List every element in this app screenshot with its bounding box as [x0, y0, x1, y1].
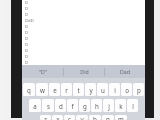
staticText: d: [59, 102, 63, 110]
staticText: q: [27, 86, 31, 94]
button[interactable]: D: [22, 54, 145, 60]
button[interactable]: f: [67, 99, 78, 112]
staticText: y: [89, 86, 93, 94]
staticText: i: [114, 86, 116, 94]
staticText: Did: [80, 68, 89, 75]
staticText: k: [119, 102, 123, 110]
button[interactable]: Did: [64, 65, 104, 78]
staticText: D: [25, 60, 29, 65]
button[interactable]: DdD: [22, 18, 145, 24]
staticText: p: [137, 86, 141, 94]
staticText: a: [33, 102, 37, 110]
staticText: g: [83, 102, 87, 110]
staticText: r: [65, 86, 68, 94]
button[interactable]: D: [22, 30, 145, 36]
button[interactable]: D: [22, 42, 145, 48]
button[interactable]: a: [29, 99, 41, 112]
staticText: m: [118, 115, 124, 120]
button[interactable]: Dad: [105, 65, 145, 78]
staticText: D: [25, 12, 29, 18]
button[interactable]: v: [76, 115, 88, 120]
button[interactable]: k: [115, 99, 126, 112]
button[interactable]: D: [22, 24, 145, 30]
button[interactable]: x: [52, 115, 63, 120]
button[interactable]: D: [22, 48, 145, 54]
button[interactable]: t: [73, 83, 84, 96]
button[interactable]: n: [102, 115, 114, 120]
button[interactable]: p: [133, 83, 144, 96]
staticText: c: [68, 115, 71, 120]
button[interactable]: q: [23, 83, 35, 96]
staticText: D: [25, 36, 29, 42]
button[interactable]: o: [121, 83, 132, 96]
staticText: D: [25, 30, 29, 36]
button[interactable]: w: [36, 83, 48, 96]
button[interactable]: c: [64, 115, 75, 120]
button[interactable]: u: [97, 83, 108, 96]
button[interactable]: h: [91, 99, 102, 112]
button[interactable]: d: [55, 99, 66, 112]
button[interactable]: l: [127, 99, 138, 112]
button[interactable]: j: [103, 99, 114, 112]
staticText: f: [71, 102, 74, 110]
staticText: Dad: [120, 68, 130, 75]
button[interactable]: r: [61, 83, 72, 96]
button[interactable]: D: [22, 6, 145, 12]
staticText: l: [132, 102, 134, 110]
staticText: e: [53, 86, 57, 94]
staticText: “D”: [39, 68, 47, 75]
staticText: o: [125, 86, 129, 94]
button[interactable]: y: [85, 83, 96, 96]
staticText: v: [80, 115, 84, 120]
staticText: D: [25, 6, 29, 12]
staticText: n: [106, 115, 110, 120]
button[interactable]: e: [49, 83, 60, 96]
staticText: w: [40, 86, 45, 94]
staticText: s: [47, 102, 50, 110]
button[interactable]: i: [109, 83, 120, 96]
staticText: D: [25, 24, 29, 30]
button[interactable]: D: [22, 36, 145, 42]
button[interactable]: z: [40, 115, 51, 120]
button[interactable]: D: [22, 60, 145, 65]
button[interactable]: m: [115, 115, 127, 120]
button[interactable]: D: [22, 12, 145, 18]
staticText: z: [44, 115, 47, 120]
staticText: u: [101, 86, 105, 94]
staticText: b: [93, 115, 97, 120]
button[interactable]: D: [22, 0, 145, 6]
staticText: D: [25, 54, 29, 60]
staticText: j: [108, 102, 110, 110]
button[interactable]: b: [89, 115, 101, 120]
staticText: DdD: [25, 18, 34, 24]
staticText: D: [25, 42, 29, 48]
staticText: D: [25, 48, 29, 54]
staticText: t: [77, 86, 80, 94]
button[interactable]: g: [79, 99, 90, 112]
button[interactable]: s: [42, 99, 54, 112]
button[interactable]: “D”: [22, 65, 63, 78]
staticText: D: [25, 0, 29, 6]
staticText: x: [56, 115, 60, 120]
staticText: h: [95, 102, 99, 110]
